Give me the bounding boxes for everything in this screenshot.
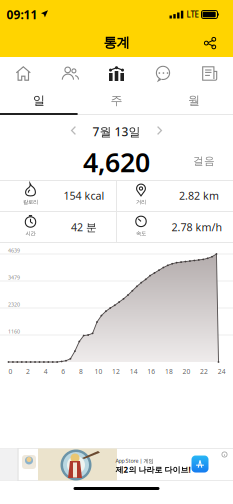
staticText: 20 — [182, 367, 190, 376]
staticText: 2.82 km — [179, 188, 219, 203]
button[interactable]: Statistics — [93, 58, 139, 89]
button[interactable]: Home — [0, 58, 46, 89]
button[interactable]: Friends — [47, 58, 93, 89]
staticText: 통계 — [103, 34, 129, 51]
button[interactable]: Previous day — [63, 120, 83, 140]
staticText: LTE — [186, 9, 198, 20]
staticText: 2320 — [8, 301, 20, 308]
staticText: 주 — [110, 93, 122, 108]
staticText: 2 — [26, 367, 30, 376]
staticText: 4,620 — [83, 144, 150, 180]
staticText: 거리 — [136, 199, 146, 205]
staticText: 제2의 나라로 다이브! — [115, 464, 190, 475]
staticText: 일 — [33, 93, 45, 108]
staticText: 14 — [130, 367, 138, 376]
staticText: 8 — [79, 367, 83, 376]
staticText: 월 — [188, 93, 200, 108]
staticText: 1160 — [8, 328, 20, 335]
staticText: 12 — [112, 367, 120, 376]
button[interactable]: 월 — [155, 88, 233, 113]
button[interactable]: Advertisement: 제2의 나라로 다이브! — [0, 448, 233, 481]
button[interactable]: Messages — [140, 58, 186, 89]
staticText: 칼로리 — [23, 199, 38, 205]
button[interactable]: 일 — [0, 88, 78, 113]
staticText: 10 — [94, 367, 102, 376]
staticText: 4 — [44, 367, 48, 376]
staticText: 24 — [218, 367, 226, 376]
staticText: 22 — [200, 367, 208, 376]
staticText: 7월 13일 — [92, 123, 140, 139]
staticText: 0 — [8, 367, 12, 376]
button[interactable]: News — [187, 58, 233, 89]
staticText: 6 — [61, 367, 65, 376]
button[interactable]: 주 — [78, 88, 155, 113]
staticText: 18 — [165, 367, 173, 376]
staticText: App Store | 게임 — [115, 457, 153, 464]
staticText: 16 — [147, 367, 155, 376]
staticText: 걸음 — [193, 154, 215, 167]
staticText: 154 kcal — [63, 188, 104, 203]
staticText: 3479 — [8, 274, 20, 281]
button[interactable]: Next day — [149, 120, 169, 140]
staticText: 42 분 — [71, 220, 97, 234]
staticText: 2.78 km/h — [171, 220, 222, 234]
staticText: 4639 — [8, 247, 20, 254]
staticText: 속도 — [136, 230, 146, 237]
button[interactable]: Share — [198, 31, 222, 55]
staticText: 시간 — [25, 230, 35, 237]
staticText: 09:11 — [6, 6, 37, 22]
